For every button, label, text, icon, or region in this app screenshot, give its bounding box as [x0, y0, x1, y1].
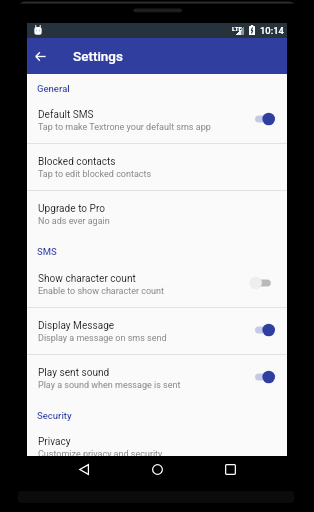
staticText: Upgrade to Pro: [38, 203, 106, 215]
button[interactable]: Toggle off: [254, 274, 276, 292]
button[interactable]: Back: [67, 452, 101, 486]
staticText: SMS: [37, 246, 57, 257]
staticText: General: [37, 83, 70, 94]
button[interactable]: Default SMS: [27, 96, 287, 143]
staticText: Blocked contacts: [38, 156, 116, 168]
staticText: Customize privacy and security: [38, 449, 163, 456]
button[interactable]: Back: [27, 38, 54, 74]
staticText: 10:14: [260, 25, 284, 36]
staticText: Play a sound when message is sent: [38, 380, 181, 391]
staticText: Tap to edit blocked contacts: [38, 169, 152, 180]
staticText: Enable to show character count: [38, 286, 164, 297]
button[interactable]: Blocked contacts: [27, 143, 287, 190]
button[interactable]: Toggle on: [254, 321, 276, 339]
button[interactable]: Recents: [213, 452, 247, 486]
staticText: No ads ever again: [38, 216, 110, 227]
staticText: Security: [37, 410, 72, 421]
button[interactable]: Display Message: [27, 307, 287, 354]
staticText: Display Message: [38, 320, 115, 332]
staticText: Show character count: [38, 273, 136, 285]
button[interactable]: Privacy: [27, 423, 287, 456]
button[interactable]: Toggle on: [254, 368, 276, 386]
button[interactable]: Upgrade to Pro: [27, 190, 287, 237]
staticText: Tap to make Textrone your default sms ap…: [38, 122, 211, 133]
button[interactable]: Home: [140, 452, 174, 486]
staticText: Default SMS: [38, 109, 94, 121]
staticText: Settings: [73, 48, 123, 64]
button[interactable]: Show character count: [27, 260, 287, 307]
staticText: LTE: [232, 25, 242, 32]
button[interactable]: Play sent sound: [27, 354, 287, 401]
staticText: Play sent sound: [38, 367, 110, 379]
staticText: Privacy: [38, 436, 71, 448]
button[interactable]: Toggle on: [254, 110, 276, 128]
staticText: Display a message on sms send: [38, 333, 167, 344]
